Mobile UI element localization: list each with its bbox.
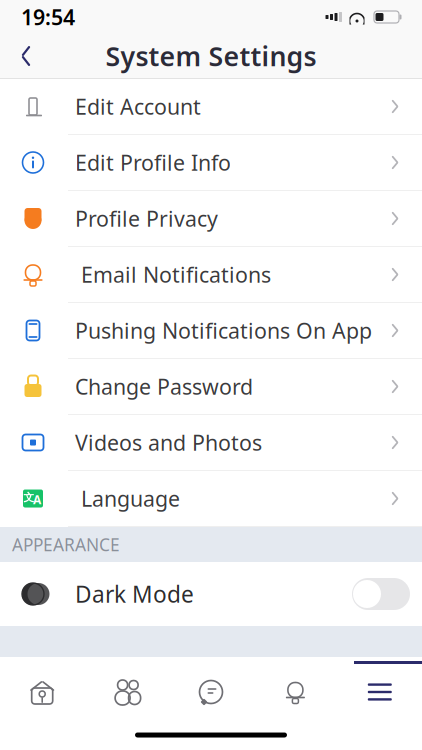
staticText: Language (75, 484, 180, 513)
button[interactable]: Change Password (0, 359, 422, 415)
staticText: System Settings (105, 38, 316, 74)
button[interactable]: Home (0, 677, 84, 707)
button[interactable]: Videos and Photos (0, 415, 422, 471)
staticText: Profile Privacy (75, 204, 218, 233)
button[interactable]: Notifications (253, 680, 338, 704)
button[interactable]: Menu (338, 677, 422, 707)
staticText: Edit Account (75, 92, 201, 121)
button[interactable]: Messages (169, 677, 253, 707)
button[interactable]: Pushing Notifications On App (0, 303, 422, 359)
staticText: APPEARANCE (12, 533, 120, 556)
button[interactable]: Email Notifications (0, 247, 422, 303)
staticText: Edit Profile Info (75, 148, 231, 177)
button[interactable]: A (0, 471, 422, 527)
button[interactable]: Back (6, 36, 46, 76)
staticText: 文 (23, 491, 34, 504)
staticText: Videos and Photos (75, 428, 262, 457)
staticText: Change Password (75, 372, 253, 401)
button[interactable]: Edit Profile Info (0, 135, 422, 191)
button[interactable]: Dark Mode (0, 562, 422, 626)
staticText: Email Notifications (75, 260, 271, 289)
button[interactable]: Edit Account (0, 79, 422, 135)
staticText: Pushing Notifications On App (75, 316, 372, 345)
button[interactable]: Profile Privacy (0, 191, 422, 247)
staticText: Dark Mode (75, 579, 194, 609)
staticText: A (33, 491, 41, 507)
button[interactable]: Friends (84, 677, 169, 707)
staticText: 19:54 (21, 3, 75, 31)
